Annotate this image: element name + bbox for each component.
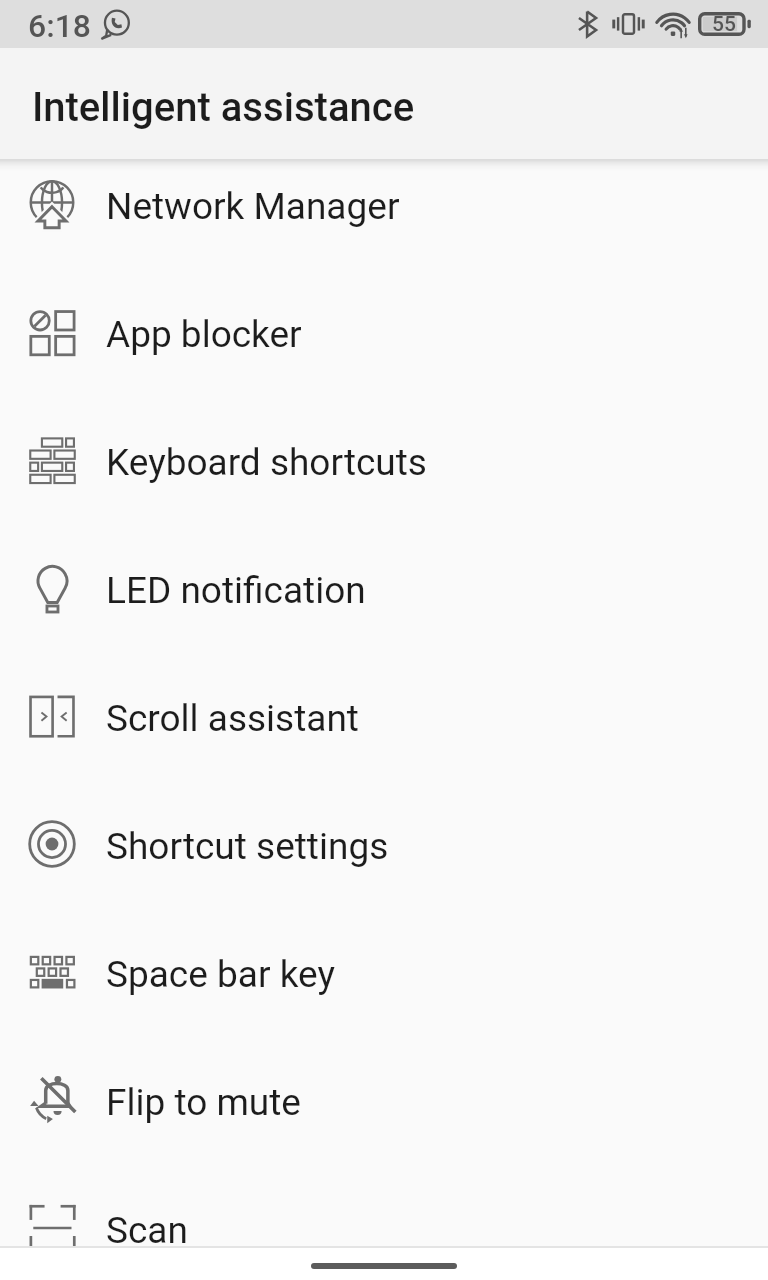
button[interactable]: Keyboard shortcuts: [0, 396, 768, 524]
staticText: 55: [712, 12, 736, 36]
staticText: LED notification: [106, 569, 366, 612]
button[interactable]: Scan: [0, 1164, 768, 1248]
staticText: Scroll assistant: [106, 697, 359, 740]
button[interactable]: LED notification: [0, 524, 768, 652]
staticText: Intelligent assistance: [32, 84, 415, 131]
staticText: Shortcut settings: [106, 825, 389, 868]
staticText: Scan: [106, 1209, 188, 1248]
staticText: Space bar key: [106, 953, 335, 996]
staticText: Flip to mute: [106, 1081, 301, 1124]
button[interactable]: Space bar key: [0, 908, 768, 1036]
button[interactable]: Shortcut settings: [0, 780, 768, 908]
staticText: Network Manager: [106, 185, 400, 228]
button[interactable]: App blocker: [0, 268, 768, 396]
staticText: Keyboard shortcuts: [106, 441, 427, 484]
button[interactable]: Network Manager: [0, 160, 768, 268]
staticText: 6:18: [28, 7, 92, 45]
button[interactable]: Flip to mute: [0, 1036, 768, 1164]
button[interactable]: Scroll assistant: [0, 652, 768, 780]
staticText: App blocker: [106, 313, 302, 356]
